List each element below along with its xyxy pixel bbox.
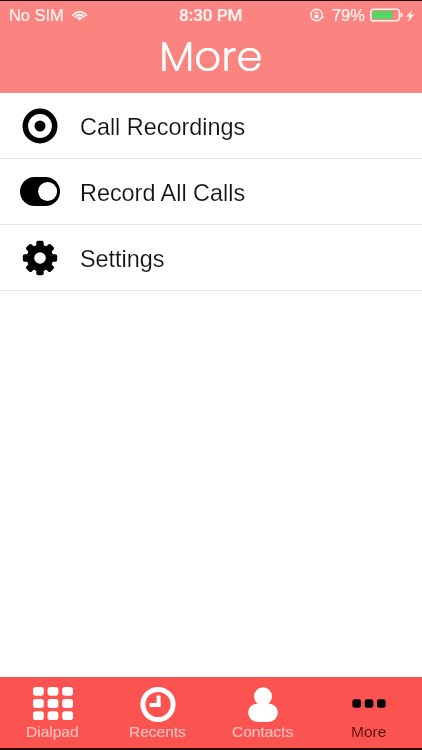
button[interactable]: Contacts bbox=[210, 677, 316, 740]
button[interactable]: Recents bbox=[105, 677, 210, 740]
staticText: Call Recordings bbox=[80, 114, 246, 140]
staticText: 79% bbox=[332, 6, 365, 24]
staticText: Recents bbox=[129, 723, 186, 740]
staticText: No SIM bbox=[9, 6, 64, 24]
button[interactable]: Settings bbox=[0, 225, 422, 290]
staticText: More bbox=[351, 723, 387, 740]
button[interactable]: Record All Calls bbox=[0, 159, 422, 224]
staticText: 8:30 PM bbox=[179, 5, 243, 25]
button[interactable]: Call Recordings bbox=[0, 93, 422, 158]
staticText: Dialpad bbox=[26, 723, 79, 740]
staticText: Record All Calls bbox=[80, 180, 246, 206]
staticText: Settings bbox=[80, 246, 165, 272]
staticText: More bbox=[159, 27, 263, 86]
staticText: Contacts bbox=[232, 723, 294, 740]
button[interactable]: More bbox=[316, 677, 422, 740]
button[interactable]: Dialpad bbox=[0, 677, 105, 740]
